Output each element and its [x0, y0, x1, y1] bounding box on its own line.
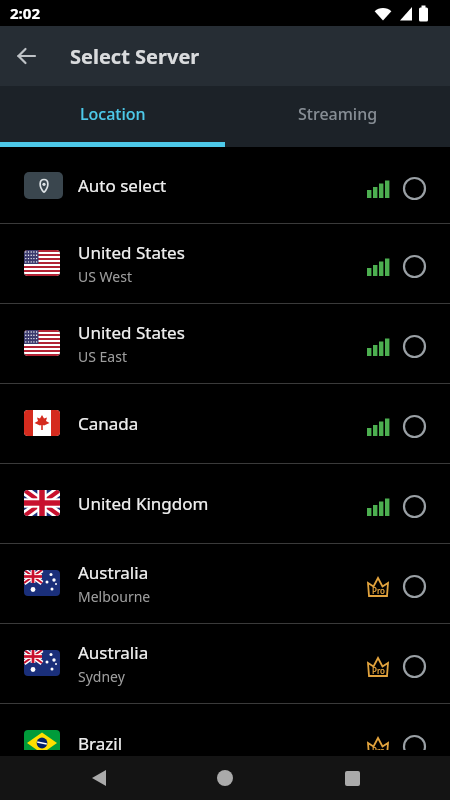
- staticText: Pro: [372, 745, 385, 750]
- button[interactable]: Australia: [0, 543, 450, 623]
- button[interactable]: Streaming: [225, 86, 450, 147]
- button[interactable]: United States: [0, 223, 450, 303]
- staticText: 2:02: [10, 3, 40, 23]
- button[interactable]: [0, 26, 52, 86]
- button[interactable]: Australia: [0, 623, 450, 703]
- staticText: United States: [78, 241, 185, 264]
- button[interactable]: United States: [0, 303, 450, 383]
- button[interactable]: [324, 756, 380, 800]
- staticText: Auto select: [78, 174, 167, 197]
- staticText: Select Server: [70, 43, 200, 70]
- staticText: Australia: [78, 641, 149, 664]
- button[interactable]: [70, 756, 126, 800]
- staticText: Brazil: [78, 732, 123, 750]
- staticText: Australia: [78, 561, 149, 584]
- staticText: United States: [78, 321, 185, 344]
- button[interactable]: United Kingdom: [0, 463, 450, 543]
- button[interactable]: Brazil: [0, 703, 450, 750]
- button[interactable]: Location: [0, 86, 225, 147]
- staticText: Pro: [372, 665, 385, 676]
- staticText: Pro: [372, 585, 385, 596]
- staticText: United Kingdom: [78, 492, 209, 515]
- staticText: Location: [80, 103, 146, 125]
- staticText: US East: [78, 347, 127, 366]
- button[interactable]: Auto select: [0, 147, 450, 223]
- staticText: Canada: [78, 412, 139, 435]
- staticText: US West: [78, 267, 132, 286]
- staticText: Melbourne: [78, 587, 151, 606]
- staticText: Streaming: [298, 103, 378, 125]
- button[interactable]: [197, 756, 253, 800]
- staticText: Sydney: [78, 667, 125, 686]
- button[interactable]: Canada: [0, 383, 450, 463]
